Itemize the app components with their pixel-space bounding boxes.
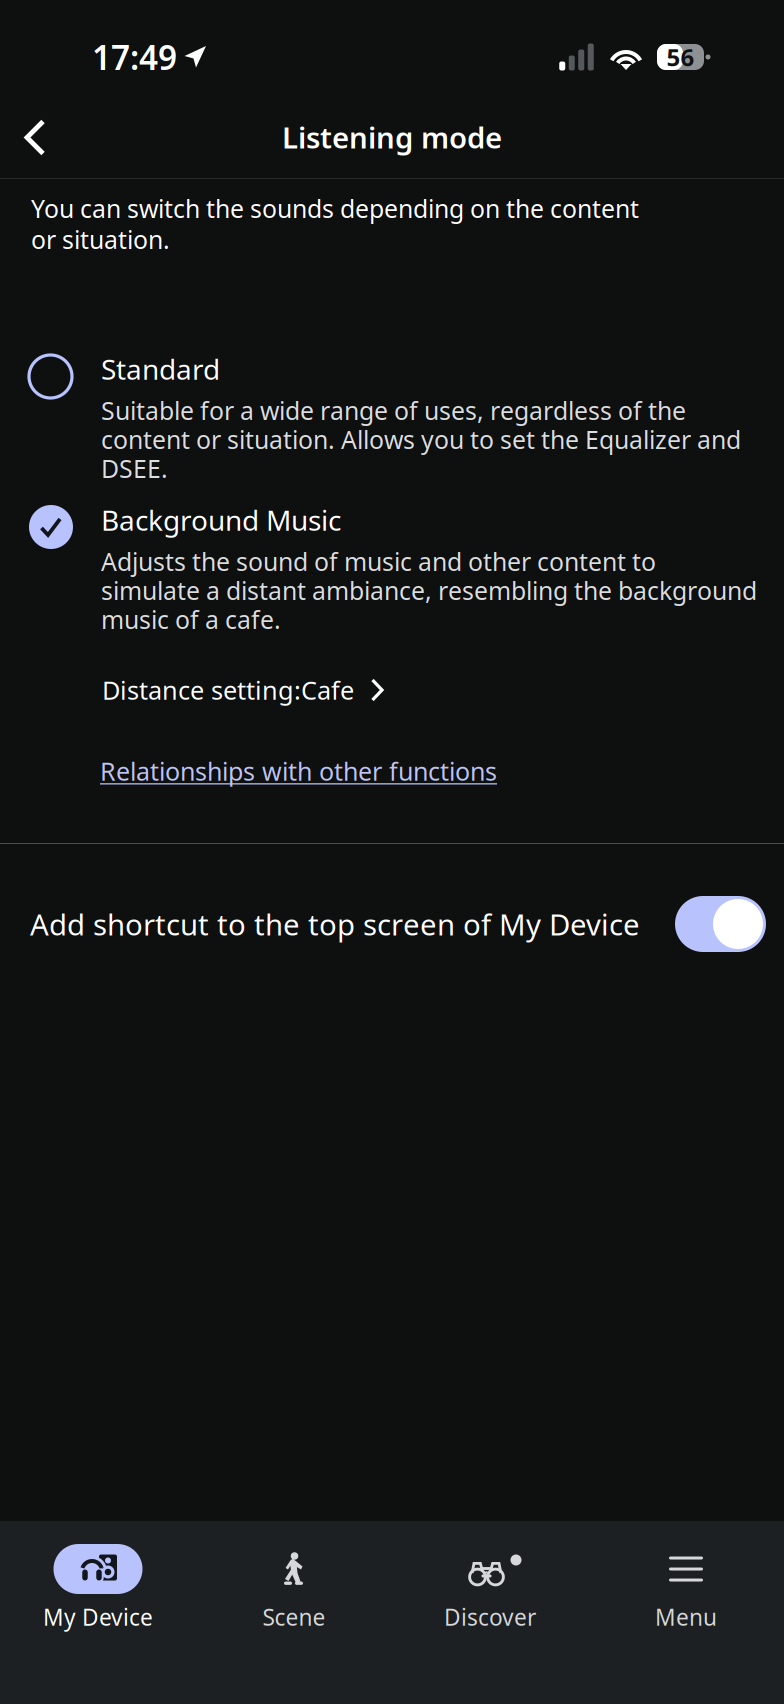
staticText: music of a cafe. [101,603,281,636]
button[interactable]: Back [0,98,74,176]
staticText: Add shortcut to the top screen of My Dev… [30,904,640,943]
staticText: simulate a distant ambiance, resembling … [101,574,757,607]
staticText: Relationships with other functions [100,754,497,788]
button[interactable]: Relationships with other functions [0,757,784,785]
staticText: Listening mode [282,117,502,156]
staticText: content or situation. Allows you to set … [101,423,741,456]
staticText: Menu [655,1602,717,1632]
button[interactable]: Menu [588,1521,784,1658]
staticText: Discover [444,1602,536,1632]
button[interactable]: Discover [392,1521,588,1658]
button[interactable]: My Device [0,1521,196,1658]
button[interactable]: Scene [196,1521,392,1658]
button[interactable]: Distance setting:Cafe [0,676,784,704]
button[interactable]: Background Music [0,505,784,634]
staticText: DSEE. [101,452,168,485]
button[interactable]: Add shortcut to the top screen of My Dev… [675,896,766,952]
staticText: or situation. [31,223,170,256]
staticText: Distance setting:Cafe [102,673,354,707]
staticText: Adjusts the sound of music and other con… [101,545,656,578]
staticText: 17:49 [92,35,177,79]
staticText: Standard [101,350,220,388]
staticText: My Device [43,1602,153,1632]
staticText: You can switch the sounds depending on t… [31,192,639,225]
staticText: Suitable for a wide range of uses, regar… [101,394,686,427]
staticText: Scene [262,1602,325,1632]
button[interactable]: Standard [0,354,784,483]
staticText: 56 [666,41,694,73]
staticText: Background Music [101,501,341,539]
